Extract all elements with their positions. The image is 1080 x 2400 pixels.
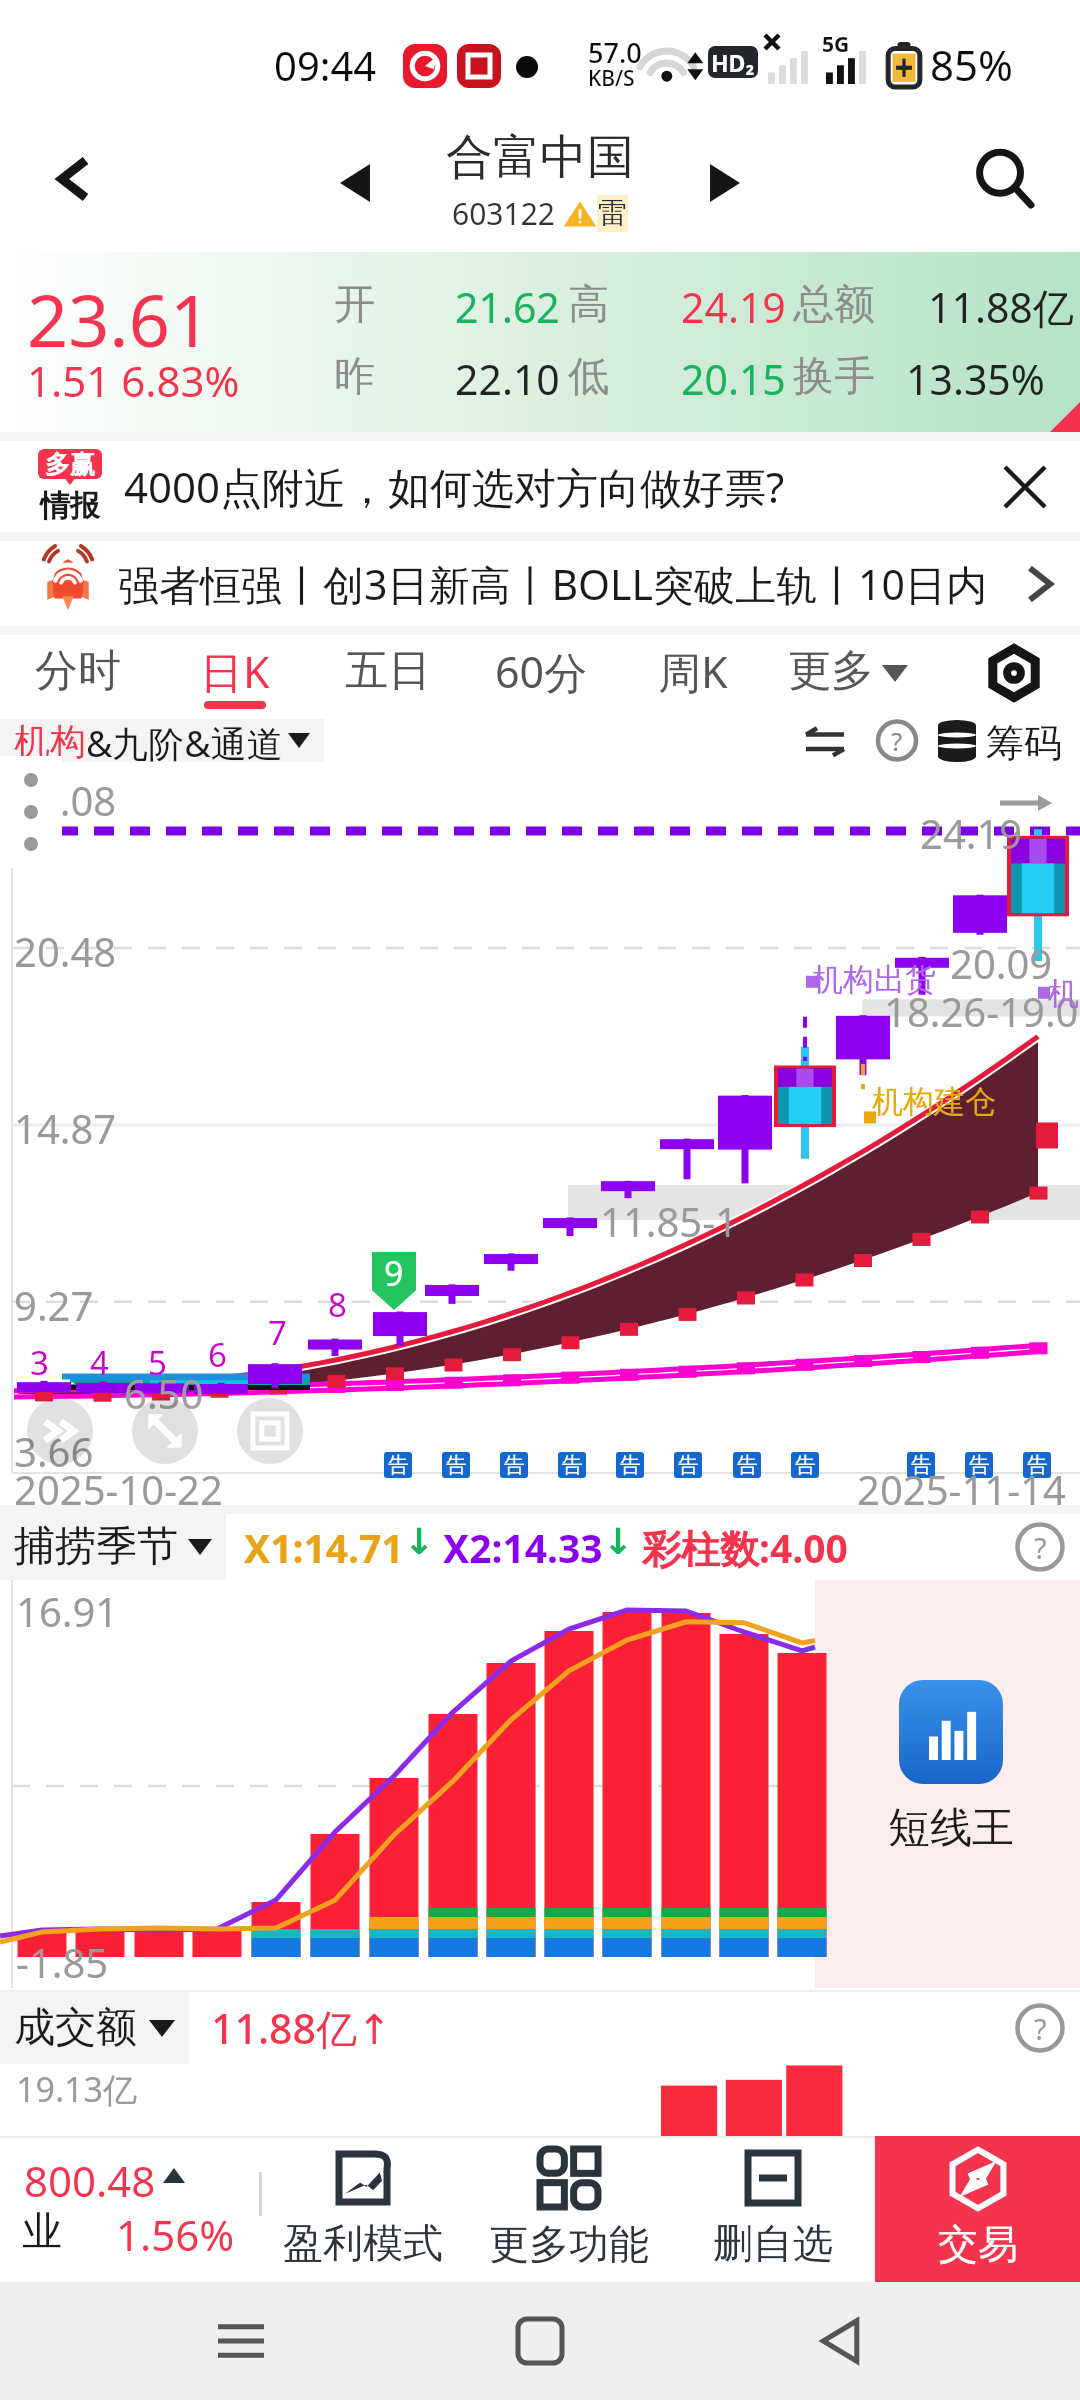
staticText: 告: [504, 1452, 525, 1478]
staticText: 800.48: [24, 2152, 156, 2209]
staticText: ↓: [603, 1521, 634, 1563]
staticText: 14.87: [14, 1101, 117, 1155]
staticText: 更多: [788, 644, 874, 698]
staticText: 24.19: [681, 279, 786, 335]
staticText: 日K: [200, 642, 270, 701]
staticText: 11.85-1: [600, 1194, 738, 1248]
staticText: KB/S: [588, 64, 635, 93]
button[interactable]: Recents: [182, 2282, 300, 2400]
staticText: 告: [562, 1452, 583, 1478]
button[interactable]: 60分: [476, 635, 606, 719]
button[interactable]: Next stock: [675, 133, 775, 233]
button[interactable]: Back: [0, 105, 150, 252]
button[interactable]: More options: [0, 756, 62, 868]
staticText: 告: [620, 1452, 641, 1478]
staticText: 5: [148, 1340, 167, 1385]
staticText: 多赢: [45, 449, 95, 479]
button[interactable]: 分时: [22, 635, 134, 719]
staticText: 20.15: [681, 351, 786, 407]
staticText: &九阶&通道: [86, 719, 283, 762]
staticText: 机构建仓: [872, 1082, 996, 1121]
staticText: 昨: [334, 351, 375, 403]
staticText: HD₂: [711, 47, 755, 78]
staticText: 9.27: [14, 1278, 94, 1332]
staticText: 换手: [793, 351, 875, 403]
staticText: 合富中国: [446, 128, 634, 187]
button[interactable]: 更多: [774, 635, 920, 719]
staticText: 告: [737, 1452, 758, 1478]
button[interactable]: Back: [781, 2282, 899, 2400]
button[interactable]: Home: [481, 2282, 599, 2400]
button[interactable]: 周K: [641, 635, 745, 719]
staticText: 3: [30, 1340, 49, 1385]
button[interactable]: 捕捞季节: [0, 1514, 226, 1580]
button[interactable]: 成交额: [0, 1992, 189, 2064]
staticText: 20.09: [950, 936, 1053, 990]
button[interactable]: Chart settings: [960, 635, 1080, 719]
staticText: 短线王: [888, 1802, 1014, 1855]
staticText: 五日: [345, 644, 431, 698]
staticText: 9: [384, 1250, 404, 1296]
staticText: 彩柱数:4.00: [642, 1521, 848, 1574]
staticText: 告: [911, 1452, 932, 1478]
staticText: 5G: [822, 30, 850, 59]
staticText: 3.66: [14, 1424, 94, 1478]
button[interactable]: Close banner: [970, 441, 1080, 532]
staticText: 20.48: [14, 924, 117, 978]
button[interactable]: Expand: [132, 1398, 198, 1464]
button[interactable]: Help: [1000, 1514, 1080, 1580]
button[interactable]: Fast forward: [27, 1398, 93, 1464]
staticText: 雷: [598, 195, 627, 232]
button[interactable]: 盈利模式: [275, 2136, 450, 2282]
button[interactable]: Swap indicator: [792, 719, 858, 762]
button[interactable]: Help: [864, 719, 930, 762]
staticText: 盈利模式: [283, 2218, 443, 2268]
button[interactable]: Previous stock: [305, 133, 405, 233]
button[interactable]: 多赢: [0, 441, 1080, 532]
button[interactable]: 机构: [0, 719, 324, 762]
staticText: 低: [568, 351, 609, 403]
staticText: 60分: [495, 642, 588, 701]
staticText: 16.91: [16, 1584, 119, 1638]
button[interactable]: Help: [1000, 1992, 1080, 2064]
button[interactable]: 五日: [332, 635, 444, 719]
staticText: 告: [446, 1452, 467, 1478]
staticText: 18.26-19.01: [884, 984, 1080, 1038]
staticText: 6: [208, 1332, 227, 1377]
button[interactable]: 强者恒强丨创3日新高丨BOLL突破上轨丨10日内: [0, 541, 1080, 626]
staticText: 分时: [35, 644, 121, 698]
staticText: 21.62: [455, 279, 560, 335]
staticText: 告: [678, 1452, 699, 1478]
staticText: 6.50: [124, 1366, 204, 1420]
staticText: 机: [1048, 974, 1079, 1013]
staticText: 2025-10-22: [14, 1462, 223, 1516]
staticText: 高: [568, 279, 609, 331]
staticText: 更多功能: [489, 2219, 649, 2269]
staticText: X1:14.71: [244, 1521, 404, 1574]
button[interactable]: 800.48: [0, 2136, 250, 2282]
staticText: 机构: [14, 719, 86, 762]
staticText: 开: [334, 279, 375, 331]
button[interactable]: 交易: [875, 2136, 1080, 2282]
staticText: 09:44: [274, 38, 377, 92]
button[interactable]: 更多功能: [481, 2136, 656, 2282]
staticText: 业: [22, 2206, 62, 2256]
staticText: 告: [1027, 1452, 1048, 1478]
staticText: 2025-11-14: [857, 1462, 1066, 1516]
staticText: 总额: [793, 279, 875, 331]
button[interactable]: 删自选: [705, 2136, 840, 2282]
button[interactable]: 日K: [185, 635, 285, 719]
staticText: 告: [795, 1452, 816, 1478]
button[interactable]: Draw: [237, 1398, 303, 1464]
button[interactable]: 短线王: [888, 1680, 1014, 1855]
staticText: 4000点附近，如何选对方向做好票?: [124, 458, 785, 515]
staticText: 捕捞季节: [14, 1521, 178, 1573]
staticText: 周K: [658, 642, 728, 701]
button[interactable]: Search: [930, 105, 1080, 252]
staticText: ↓: [404, 1521, 435, 1563]
staticText: 11.88亿↑: [211, 2000, 392, 2056]
button[interactable]: 筹码: [938, 719, 1080, 762]
staticText: 1.51 6.83%: [27, 352, 240, 409]
staticText: 57.0: [588, 34, 642, 71]
staticText: 24.19: [920, 806, 1023, 860]
